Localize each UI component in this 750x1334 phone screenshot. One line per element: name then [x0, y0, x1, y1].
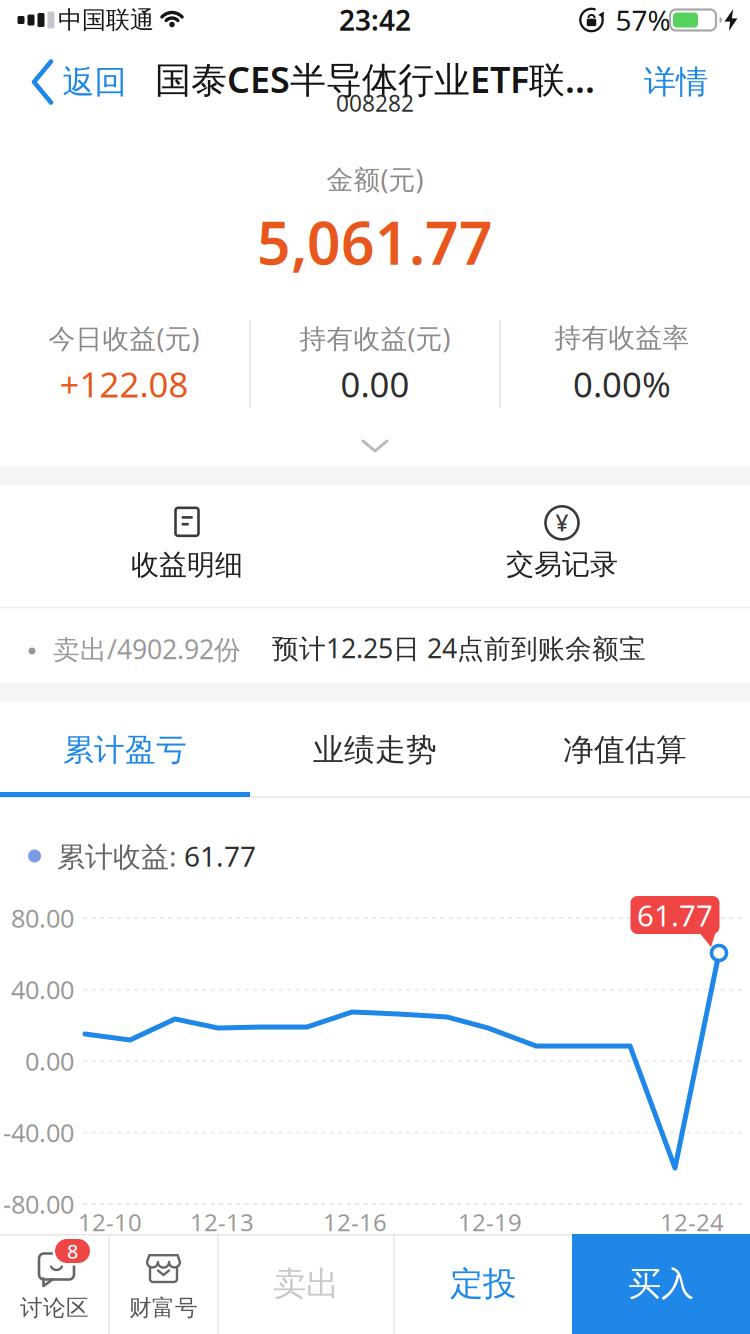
staticText: 008282: [336, 88, 414, 118]
staticText: 累计盈亏: [63, 731, 187, 769]
staticText: 8: [67, 1238, 78, 1264]
button[interactable]: 财富号: [109, 1234, 218, 1334]
staticText: 40.00: [11, 973, 74, 1006]
staticText: 预计12.25日 24点前到账余额宝: [272, 630, 646, 666]
staticText: -40.00: [3, 1116, 74, 1149]
staticText: 61.77: [637, 895, 713, 934]
button[interactable]: 累计盈亏: [0, 702, 250, 797]
button[interactable]: 净值估算: [500, 702, 750, 797]
staticText: 持有收益(元): [299, 320, 450, 356]
staticText: 返回: [62, 62, 126, 102]
button[interactable]: 卖出: [218, 1234, 394, 1334]
staticText: 累计收益:: [57, 837, 184, 875]
staticText: 80.00: [11, 901, 74, 935]
button[interactable]: ¥: [422, 494, 702, 594]
button[interactable]: 业绩走势: [250, 702, 500, 797]
staticText: 12-16: [323, 1206, 387, 1238]
staticText: ¥: [555, 508, 568, 538]
staticText: 交易记录: [506, 547, 618, 582]
staticText: 卖出: [273, 1263, 339, 1304]
staticText: 财富号: [129, 1294, 198, 1322]
button[interactable]: 收益明细: [47, 495, 327, 595]
staticText: 卖出/4902.92份: [53, 631, 241, 667]
staticText: 5,061.77: [257, 203, 493, 281]
staticText: 收益明细: [131, 548, 243, 582]
staticText: 12-19: [458, 1206, 522, 1238]
staticText: 12-13: [190, 1206, 254, 1238]
button[interactable]: 定投: [394, 1234, 572, 1334]
staticText: 净值估算: [563, 731, 687, 769]
staticText: 讨论区: [20, 1294, 89, 1322]
staticText: 0.00: [25, 1044, 74, 1078]
staticText: 持有收益率: [554, 322, 689, 354]
staticText: 今日收益(元): [48, 320, 199, 356]
staticText: +122.08: [59, 361, 188, 407]
staticText: 23:42: [339, 1, 411, 39]
staticText: 国泰CES半导体行业ETF联...: [155, 55, 595, 103]
staticText: 0.00: [340, 361, 409, 407]
staticText: 0.00%: [573, 361, 671, 407]
staticText: 详情: [644, 62, 708, 102]
button[interactable]: 收起: [361, 439, 389, 453]
button[interactable]: 讨论区: [0, 1234, 108, 1334]
staticText: 金额(元): [326, 161, 423, 197]
button[interactable]: 返回: [31, 52, 126, 112]
staticText: -80.00: [3, 1187, 74, 1221]
staticText: 买入: [628, 1263, 694, 1304]
staticText: 61.77: [184, 837, 256, 875]
staticText: 57%: [615, 1, 670, 39]
staticText: 12-24: [660, 1206, 724, 1238]
staticText: 业绩走势: [313, 731, 437, 769]
button[interactable]: 详情: [626, 52, 726, 112]
button[interactable]: 买入: [572, 1234, 750, 1334]
staticText: 12-10: [78, 1206, 142, 1238]
staticText: 中国联通: [58, 5, 154, 35]
staticText: 定投: [450, 1263, 516, 1304]
